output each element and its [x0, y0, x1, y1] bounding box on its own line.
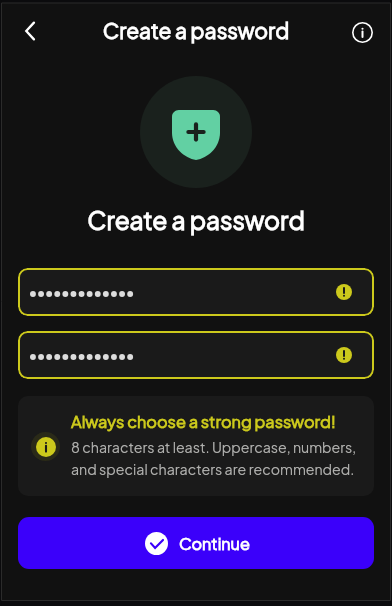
button[interactable] [18, 268, 374, 316]
staticText: Create a password [0, 205, 392, 236]
button[interactable]: Continue [18, 517, 374, 569]
button[interactable] [18, 331, 374, 379]
staticText: 8 characters at least. Uppercase, number… [71, 438, 366, 478]
button[interactable]: Back [10, 11, 50, 51]
staticText: Create a password [0, 17, 392, 43]
staticText: Always choose a strong password! [71, 411, 336, 432]
staticText: Continue [179, 533, 250, 553]
button[interactable]: Information [342, 12, 382, 52]
